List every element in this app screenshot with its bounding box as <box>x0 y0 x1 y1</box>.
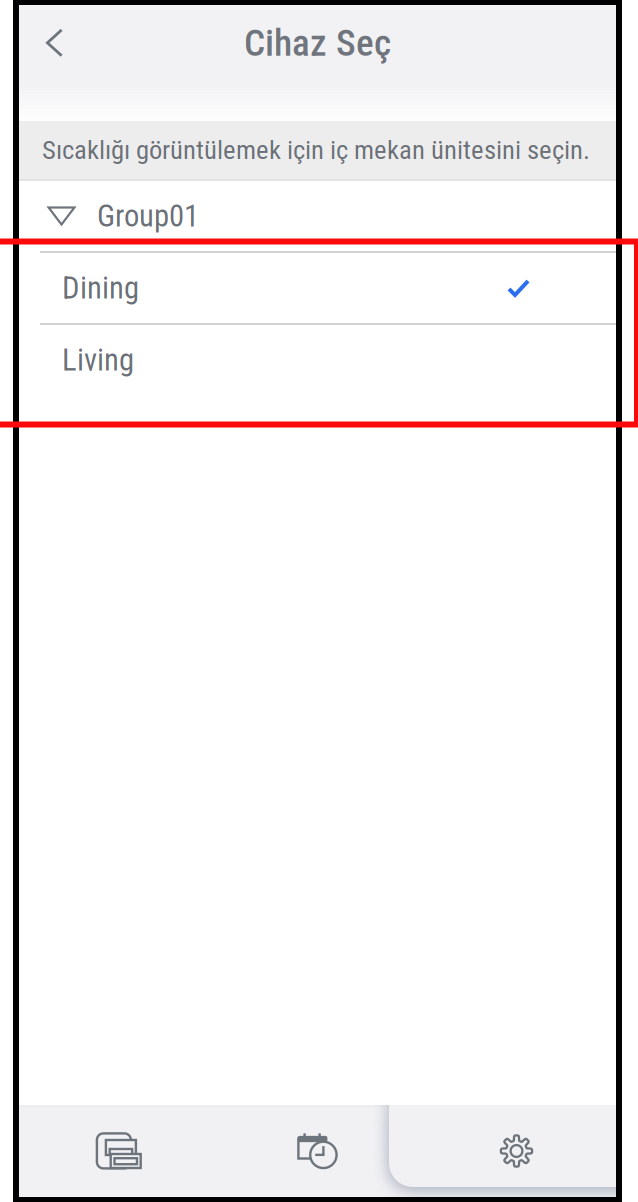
staticText: Dining <box>62 270 139 306</box>
button[interactable]: Living <box>19 325 616 395</box>
button[interactable]: Schedule <box>218 1105 417 1197</box>
button[interactable]: Dining <box>19 253 616 323</box>
staticText: Sıcaklığı görüntülemek için iç mekan üni… <box>42 134 590 166</box>
staticText: Group01 <box>97 198 199 234</box>
button[interactable]: Back <box>19 5 119 81</box>
staticText: Cihaz Seç <box>244 21 391 65</box>
staticText: Living <box>62 342 134 378</box>
button[interactable]: Air conditioner <box>19 1105 218 1197</box>
button[interactable]: Settings <box>417 1105 616 1197</box>
button[interactable]: Group01 <box>19 181 616 251</box>
